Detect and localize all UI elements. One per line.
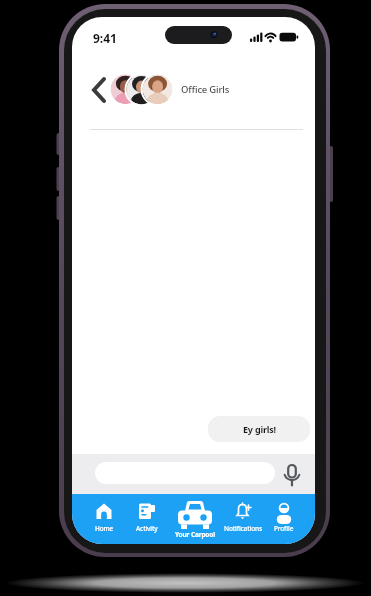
staticText: Activity (136, 524, 158, 533)
staticText: 9:41 (93, 30, 117, 46)
staticText: Notifications (224, 524, 262, 533)
staticText: Profile (274, 524, 294, 533)
button[interactable] (86, 75, 112, 105)
button[interactable]: Profile (255, 494, 313, 544)
staticText: Ey girls! (243, 423, 276, 435)
button[interactable]: Notifications (214, 494, 272, 544)
staticText: Home (95, 524, 114, 533)
button[interactable] (280, 461, 304, 489)
button[interactable]: Activity (118, 494, 176, 544)
staticText: Your Carpool (175, 530, 215, 539)
button[interactable]: Home (75, 494, 133, 544)
staticText: Office Girls (181, 83, 230, 96)
button[interactable]: Your Carpool (163, 494, 227, 544)
button[interactable]: Ey girls! (208, 416, 310, 442)
